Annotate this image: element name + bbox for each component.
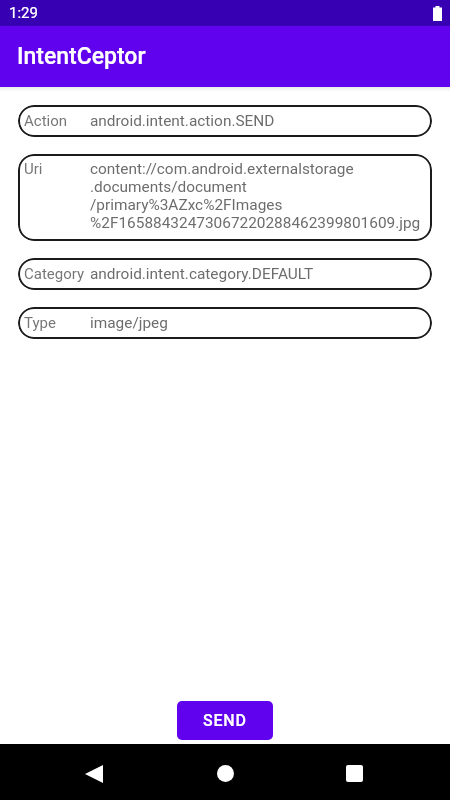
other: Battery bbox=[433, 6, 442, 21]
staticText: Category bbox=[24, 265, 90, 283]
button[interactable]: Back bbox=[66, 746, 121, 800]
button[interactable]: Category bbox=[18, 258, 432, 290]
staticText: android.intent.category.DEFAULT bbox=[90, 265, 314, 283]
button[interactable]: Type bbox=[18, 307, 432, 339]
staticText: Uri bbox=[24, 160, 90, 178]
staticText: SEND bbox=[203, 711, 247, 730]
button[interactable]: Uri bbox=[18, 154, 432, 241]
button[interactable]: SEND bbox=[177, 701, 273, 740]
staticText: 1:29 bbox=[9, 4, 38, 22]
staticText: content://com.android.externalstorage .d… bbox=[90, 160, 421, 232]
button[interactable]: Home bbox=[198, 746, 253, 800]
button[interactable]: Recent apps bbox=[327, 746, 382, 800]
staticText: Type bbox=[24, 314, 90, 332]
staticText: IntentCeptor bbox=[17, 43, 146, 70]
staticText: android.intent.action.SEND bbox=[90, 112, 275, 130]
staticText: Action bbox=[24, 112, 90, 130]
staticText: image/jpeg bbox=[90, 314, 168, 332]
button[interactable]: Action bbox=[18, 105, 432, 137]
